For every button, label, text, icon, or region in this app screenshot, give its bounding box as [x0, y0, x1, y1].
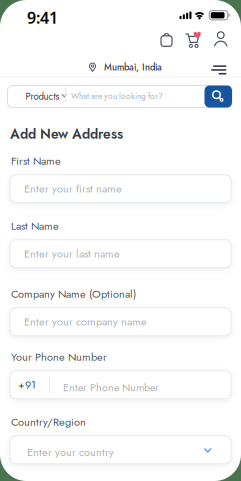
staticText: Mumbai, India [104, 60, 162, 74]
staticText: What are you looking for? [71, 90, 163, 102]
staticText: Enter your country [27, 444, 114, 460]
staticText: +91 [18, 377, 36, 393]
button[interactable]: Menu [211, 61, 226, 71]
button[interactable]: Cart [185, 32, 201, 47]
button[interactable]: Account [214, 31, 227, 46]
staticText: Last Name [11, 218, 59, 234]
staticText: Company Name (Optional) [11, 286, 136, 302]
staticText: Enter your last name [24, 246, 120, 262]
button[interactable]: Products category [7, 85, 67, 107]
button[interactable]: Search [204, 85, 232, 107]
button[interactable]: Search products [65, 85, 204, 107]
button[interactable]: Enter your first name [10, 175, 231, 203]
button[interactable]: Enter your company name [10, 308, 231, 336]
button[interactable]: Bag [160, 32, 173, 47]
button[interactable]: Enter your last name [10, 240, 231, 268]
staticText: First Name [11, 153, 61, 169]
button[interactable]: Select country [10, 436, 231, 464]
staticText: Enter your company name [24, 314, 147, 330]
staticText: 9:41 [27, 7, 58, 28]
button[interactable]: Change location [89, 60, 162, 74]
staticText: Add New Address [10, 124, 123, 144]
staticText: Country/Region [11, 414, 86, 430]
staticText: Your Phone Number [11, 349, 107, 365]
staticText: Enter Phone Number [63, 380, 159, 395]
staticText: Enter your first name [24, 181, 122, 197]
staticText: Products [25, 90, 59, 103]
button[interactable]: +91 [10, 371, 231, 399]
